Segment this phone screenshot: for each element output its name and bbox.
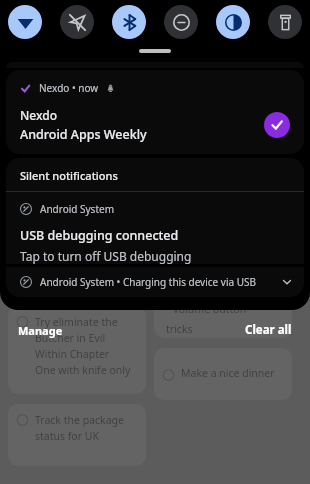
button[interactable]: Expand quick settings	[139, 49, 171, 53]
button[interactable]: Manage	[16, 321, 65, 340]
button[interactable]: Bluetooth	[112, 5, 146, 39]
button[interactable]: Nexdo • now	[6, 70, 304, 154]
staticText: • Volume button	[166, 306, 247, 316]
staticText: Android System • Charging this device vi…	[40, 275, 256, 289]
button[interactable]: Wi-Fi	[8, 5, 42, 39]
button[interactable]: Silent notifications	[6, 158, 304, 192]
button[interactable]: Location off	[60, 5, 94, 39]
staticText: Manage	[18, 323, 63, 338]
button[interactable]: Make a nice dinner	[154, 348, 292, 400]
staticText: status for UK	[35, 429, 99, 443]
staticText: Android Apps Weekly	[20, 126, 147, 143]
staticText: tricks	[166, 322, 193, 336]
button[interactable]: Do not disturb	[164, 5, 198, 39]
button[interactable]: Flashlight	[268, 5, 302, 39]
staticText: Within Chapter	[35, 347, 110, 361]
button[interactable]: Android System • Charging this device vi…	[6, 267, 304, 297]
button[interactable]: • Volume button	[154, 306, 292, 338]
staticText: Try eliminate the	[35, 315, 118, 329]
staticText: Make a nice dinner	[181, 366, 275, 380]
staticText: Nexdo	[20, 107, 58, 123]
staticText: Silent notifications	[20, 168, 118, 183]
staticText: Track the package	[35, 413, 124, 427]
staticText: Clear all	[245, 322, 292, 338]
staticText: Android System	[40, 202, 115, 216]
other: Expand	[282, 277, 292, 287]
button[interactable]: Mark as read	[264, 112, 290, 138]
staticText: Tap to turn off USB debugging	[20, 248, 192, 264]
button[interactable]: Dark theme	[216, 5, 250, 39]
staticText: Butcher in Evil	[35, 331, 106, 345]
staticText: Nexdo • now	[39, 81, 99, 95]
button[interactable]: Clear all	[243, 320, 294, 340]
button[interactable]: Track the package	[8, 404, 146, 466]
staticText: USB debugging connected	[20, 227, 179, 244]
button[interactable]: Try eliminate the	[8, 306, 146, 394]
staticText: One with knife only	[35, 363, 131, 377]
